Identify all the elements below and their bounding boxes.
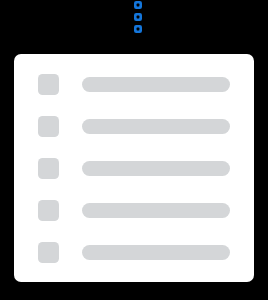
button[interactable]: List item 3, loading	[14, 147, 254, 189]
button[interactable]: List item 1, loading	[14, 63, 254, 105]
button[interactable]: List item 5, loading	[14, 231, 254, 273]
button[interactable]: More options	[134, 0, 142, 34]
button[interactable]: List item 2, loading	[14, 105, 254, 147]
button[interactable]: List item 4, loading	[14, 189, 254, 231]
